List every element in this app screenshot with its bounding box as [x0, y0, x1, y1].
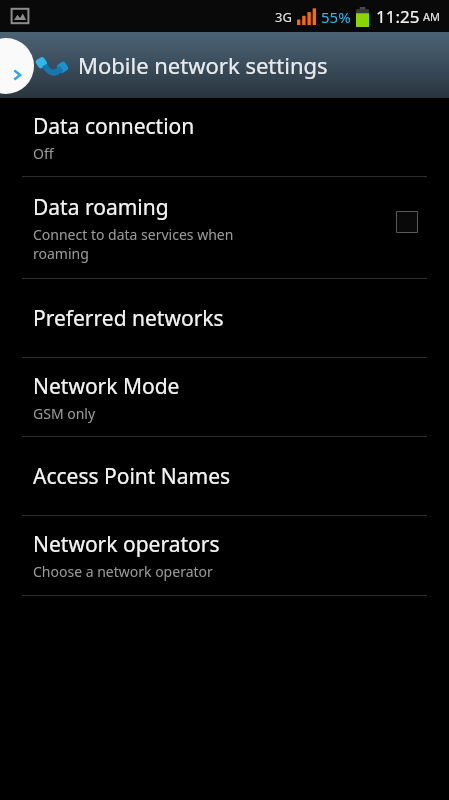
button[interactable]: Data connection — [0, 98, 449, 176]
button[interactable]: Data roaming checkbox — [389, 177, 449, 278]
staticText: Data connection — [33, 112, 195, 141]
staticText: Off — [33, 144, 54, 163]
staticText: Access Point Names — [33, 462, 231, 491]
button[interactable]: Back — [0, 32, 449, 98]
staticText: AM — [423, 9, 441, 24]
other: Back — [0, 32, 30, 98]
staticText: 55% — [321, 7, 351, 27]
staticText: 3G — [275, 8, 292, 26]
staticText: 11:25 — [376, 5, 420, 28]
button[interactable]: Access Point Names — [0, 437, 449, 515]
staticText: Data roaming — [33, 193, 169, 222]
button[interactable]: Open navigation — [0, 38, 34, 94]
staticText: Choose a network operator — [33, 562, 213, 581]
button[interactable]: Network Mode — [0, 358, 449, 436]
staticText: Network Mode — [33, 372, 180, 401]
button[interactable]: Data roaming — [0, 177, 449, 278]
button[interactable]: Preferred networks — [0, 279, 449, 357]
staticText: Connect to data services when roaming — [33, 225, 234, 263]
button[interactable]: Network operators — [0, 516, 449, 595]
staticText: GSM only — [33, 404, 96, 423]
staticText: Preferred networks — [33, 304, 224, 333]
staticText: Mobile network settings — [78, 50, 328, 80]
staticText: Network operators — [33, 530, 220, 559]
